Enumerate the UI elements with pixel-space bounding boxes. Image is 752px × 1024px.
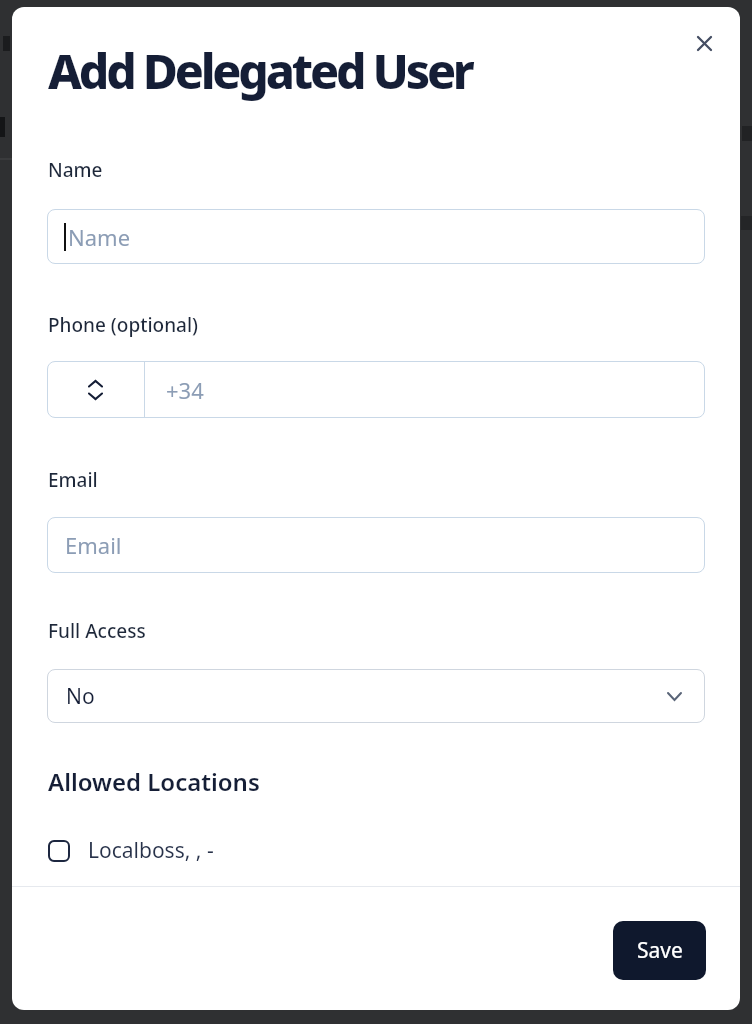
staticText: Allowed Locations [48, 765, 260, 798]
staticText: Email [48, 467, 98, 493]
staticText: Full Access [48, 618, 146, 644]
staticText: Email [65, 530, 122, 560]
staticText: Phone (optional) [48, 312, 199, 338]
staticText: Name [48, 157, 103, 183]
staticText: +34 [166, 375, 204, 405]
button[interactable]: Localboss, , - [48, 836, 214, 865]
staticText: Localboss, , - [88, 836, 214, 865]
staticText: Name [68, 222, 131, 252]
staticText: Add Delegated User [48, 38, 472, 103]
staticText: No [66, 682, 95, 711]
staticText: Save [637, 936, 683, 965]
button[interactable] [686, 25, 722, 61]
button[interactable]: Save [613, 921, 706, 980]
button[interactable] [47, 361, 144, 418]
button[interactable]: No [47, 669, 705, 723]
button[interactable]: +34 [145, 361, 705, 418]
button[interactable]: Email [47, 517, 705, 573]
button[interactable]: Name [47, 209, 705, 264]
